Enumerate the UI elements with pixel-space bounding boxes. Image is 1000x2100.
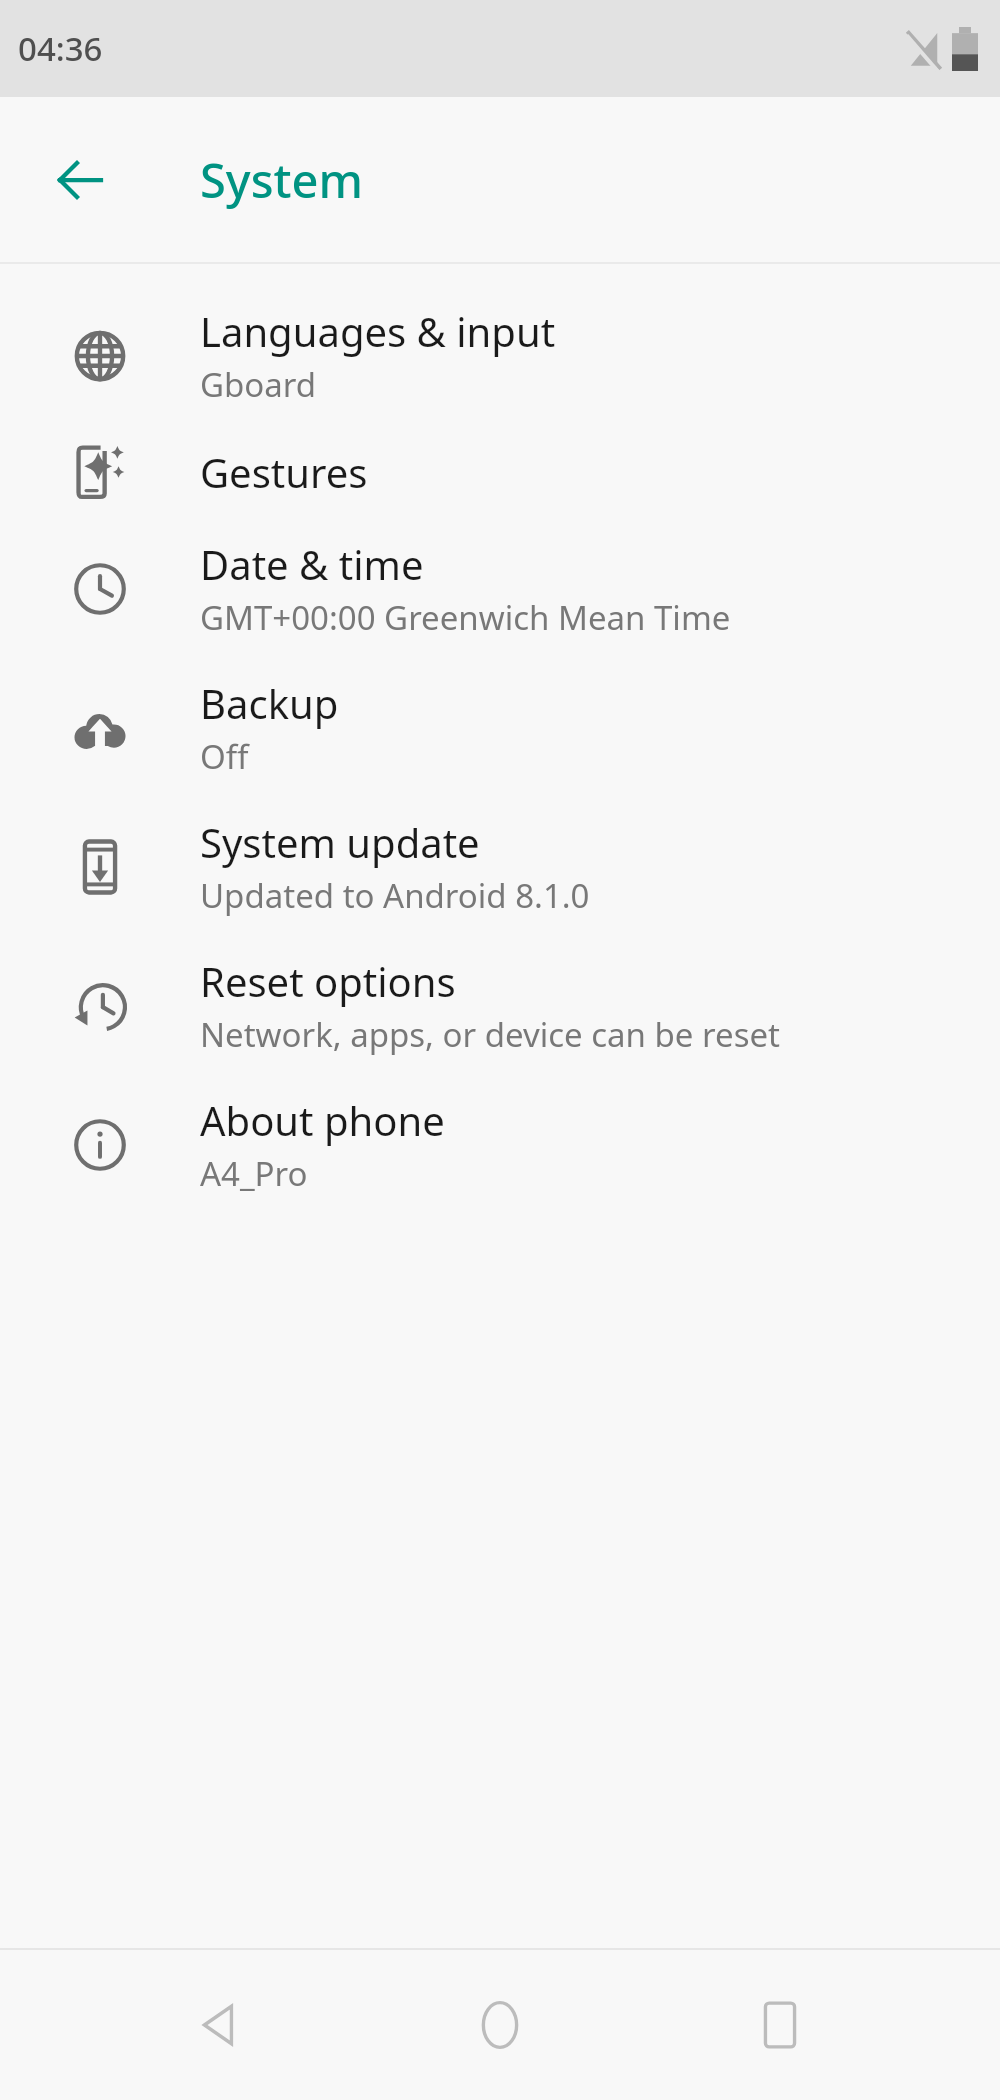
button[interactable]: System update [0,797,1000,936]
staticText: System [200,148,363,212]
staticText: Updated to Android 8.1.0 [200,873,590,918]
staticText: Gboard [200,362,317,407]
staticText: Reset options [200,954,456,1008]
button[interactable]: Backup [0,658,1000,797]
button[interactable]: Back [160,1965,280,2085]
button[interactable]: Back [28,128,132,232]
staticText: GMT+00:00 Greenwich Mean Time [200,595,731,640]
staticText: Backup [200,676,339,730]
staticText: About phone [200,1093,445,1147]
button[interactable]: Home [440,1965,560,2085]
button[interactable]: Reset options [0,936,1000,1075]
staticText: Off [200,734,249,779]
staticText: System update [200,815,480,869]
button[interactable]: About phone [0,1075,1000,1214]
staticText: 04:36 [18,26,103,71]
button[interactable]: Gestures [0,425,1000,519]
staticText: Network, apps, or device can be reset [200,1012,780,1057]
staticText: Date & time [200,537,424,591]
button[interactable]: Recent apps [720,1965,840,2085]
button[interactable]: Languages & input [0,286,1000,425]
staticText: Gestures [200,445,368,499]
staticText: Languages & input [200,304,556,358]
button[interactable]: Date & time [0,519,1000,658]
staticText: A4_Pro [200,1151,308,1196]
